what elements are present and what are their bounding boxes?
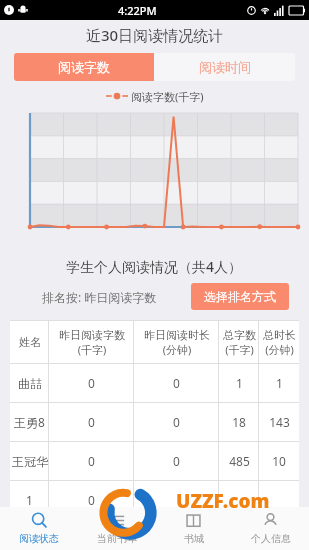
staticText: 0 — [88, 492, 95, 508]
staticText: 昨日阅读时长 (分钟) — [144, 328, 210, 357]
staticText: 选择排名方式 — [204, 289, 276, 304]
staticText: 18 — [232, 414, 246, 430]
staticText: 排名按: 昨日阅读字数 — [42, 289, 157, 305]
staticText: 姓名 — [19, 335, 41, 349]
staticText: 0 — [88, 453, 95, 469]
staticText: 阅读状态 — [19, 532, 59, 545]
button[interactable]: 个人信息 — [232, 507, 309, 550]
staticText: 阅读时间 — [199, 59, 251, 75]
staticText: 当前书单 — [97, 532, 137, 545]
staticText: 0 — [173, 375, 180, 391]
button[interactable]: 当前书单 — [78, 507, 155, 550]
staticText: 10 — [272, 453, 286, 469]
staticText: 近30日阅读情况统计 — [86, 25, 224, 45]
button[interactable]: 书城 — [155, 507, 232, 550]
staticText: 1 — [276, 375, 283, 391]
staticText: 阅读字数(千字) — [131, 89, 204, 104]
button[interactable]: 阅读字数 — [14, 53, 154, 81]
staticText: 王冠华 — [12, 454, 48, 469]
staticText: 0 — [88, 414, 95, 430]
staticText: 4:22PM — [118, 3, 157, 18]
staticText: 0 — [173, 414, 180, 430]
staticText: 学生个人阅读情况（共4人） — [66, 257, 243, 276]
staticText: UZZF.com — [176, 488, 270, 514]
staticText: 昨日阅读字数 (千字) — [59, 328, 125, 357]
staticText: 143 — [269, 414, 290, 430]
staticText: 0 — [173, 453, 180, 469]
staticText: 曲喆 — [18, 376, 42, 391]
button[interactable]: 阅读状态 — [0, 507, 78, 550]
button[interactable]: 选择排名方式 — [191, 283, 289, 310]
staticText: 总字数 (千字) — [223, 328, 256, 357]
button[interactable]: 阅读时间 — [154, 53, 295, 81]
staticText: 485 — [229, 453, 250, 469]
staticText: 阅读字数 — [58, 59, 110, 75]
staticText: 总时长 (分钟) — [263, 328, 296, 357]
staticText: 1 — [236, 375, 243, 391]
staticText: 书城 — [184, 532, 204, 545]
staticText: 王勇8 — [14, 414, 45, 430]
staticText: 0 — [88, 375, 95, 391]
staticText: 个人信息 — [251, 532, 291, 545]
staticText: 1 — [26, 492, 33, 508]
